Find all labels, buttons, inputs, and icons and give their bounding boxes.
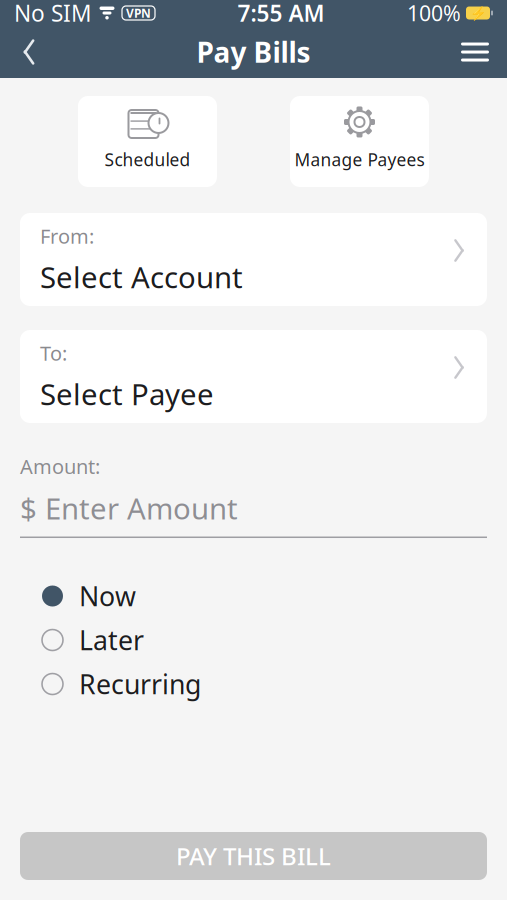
staticText: Now [79,578,136,614]
staticText: ⚡ [469,5,486,21]
staticText: Select Payee [40,374,214,413]
staticText: No SIM [14,0,92,28]
staticText: PAY THIS BILL [176,840,331,872]
staticText: Manage Payees [294,148,424,171]
staticText: Amount: [20,453,100,480]
staticText: 7:55 AM [237,0,324,28]
staticText: Select Account [40,257,243,296]
button[interactable]: Menu [449,27,501,77]
button[interactable]: Later [20,627,487,653]
button[interactable]: Recurring [20,671,487,697]
staticText: Later [79,622,144,658]
staticText: VPN [126,5,151,21]
staticText: 100% [407,0,461,27]
button[interactable]: To: [20,330,487,423]
staticText: Pay Bills [196,33,310,71]
button[interactable]: From: [20,213,487,306]
button[interactable]: Now [20,583,487,609]
staticText: From: [40,223,94,249]
staticText: To: [40,340,67,366]
staticText: $ Enter Amount [20,489,238,528]
button[interactable]: Manage Payees [290,96,429,187]
staticText: Recurring [79,666,201,702]
button[interactable]: Back [6,27,52,77]
button[interactable]: PAY THIS BILL [20,832,487,880]
button[interactable]: Scheduled [78,96,217,187]
staticText: Scheduled [104,148,190,171]
